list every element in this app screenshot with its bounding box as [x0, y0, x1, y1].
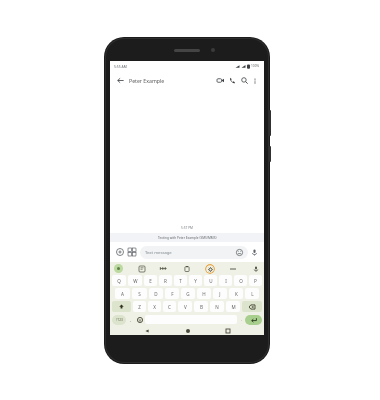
- button[interactable]: Stickers: [137, 264, 146, 273]
- button[interactable]: Attach: [114, 246, 126, 258]
- button[interactable]: E: [144, 275, 157, 286]
- staticText: Q: [117, 278, 121, 284]
- staticText: E: [149, 278, 152, 284]
- staticText: X: [153, 304, 156, 310]
- button[interactable]: G: [181, 288, 195, 299]
- staticText: R: [164, 278, 167, 284]
- button[interactable]: GIF: [159, 264, 168, 273]
- button[interactable]: C: [163, 301, 176, 312]
- button[interactable]: W: [128, 275, 142, 286]
- staticText: .: [241, 317, 243, 322]
- button[interactable]: K: [229, 288, 243, 299]
- button[interactable]: Google: [114, 264, 123, 273]
- button[interactable]: N: [210, 301, 224, 312]
- button[interactable]: A: [115, 288, 130, 299]
- button[interactable]: Voice typing: [251, 264, 260, 273]
- button[interactable]: T: [174, 275, 187, 286]
- staticText: H: [202, 291, 206, 297]
- button[interactable]: P: [249, 275, 262, 286]
- button[interactable]: Q: [112, 275, 126, 286]
- staticText: C: [168, 304, 171, 310]
- staticText: Text message: [145, 250, 172, 256]
- button[interactable]: Recents: [223, 326, 232, 335]
- staticText: W: [133, 278, 138, 284]
- staticText: 100%: [251, 64, 260, 68]
- staticText: P: [254, 278, 257, 284]
- button[interactable]: Video call: [214, 74, 226, 86]
- button[interactable]: F: [165, 288, 179, 299]
- staticText: 5:55 AM: [114, 64, 127, 69]
- staticText: 5:57 PM: [181, 226, 193, 230]
- button[interactable]: X: [148, 301, 161, 312]
- button[interactable]: H: [197, 288, 211, 299]
- button[interactable]: R: [159, 275, 172, 286]
- button[interactable]: More options: [250, 76, 259, 85]
- button[interactable]: Apps: [126, 246, 138, 258]
- button[interactable]: Backspace: [242, 301, 262, 312]
- staticText: V: [184, 304, 187, 310]
- button[interactable]: U: [204, 275, 217, 286]
- staticText: Z: [138, 304, 141, 310]
- button[interactable]: D: [149, 288, 163, 299]
- staticText: ,: [130, 317, 132, 322]
- button[interactable]: Search: [238, 74, 250, 86]
- staticText: F: [171, 291, 174, 297]
- button[interactable]: Emoji: [135, 314, 144, 325]
- staticText: L: [251, 291, 254, 297]
- staticText: A: [121, 291, 124, 297]
- button[interactable]: Shift: [112, 301, 131, 312]
- button[interactable]: ?123: [112, 315, 126, 325]
- staticText: U: [209, 278, 213, 284]
- button[interactable]: Z: [133, 301, 146, 312]
- button[interactable]: Collapse: [228, 264, 237, 273]
- button[interactable]: Settings: [205, 264, 215, 274]
- button[interactable]: Call: [226, 74, 238, 86]
- staticText: D: [154, 291, 158, 297]
- button[interactable]: Y: [189, 275, 202, 286]
- staticText: Peter Example: [129, 77, 165, 84]
- staticText: N: [215, 304, 219, 310]
- button[interactable]: Enter: [245, 315, 262, 325]
- button[interactable]: Back: [115, 75, 126, 86]
- staticText: T: [179, 278, 182, 284]
- button[interactable]: J: [213, 288, 227, 299]
- button[interactable]: Voice input: [248, 246, 260, 258]
- staticText: K: [235, 291, 238, 297]
- button[interactable]: Clipboard: [182, 264, 191, 273]
- staticText: M: [231, 304, 236, 310]
- button[interactable]: Comma: [126, 314, 135, 325]
- button[interactable]: V: [178, 301, 192, 312]
- staticText: B: [200, 304, 203, 310]
- button[interactable]: B: [194, 301, 208, 312]
- staticText: G: [186, 291, 190, 297]
- staticText: J: [219, 291, 221, 297]
- button[interactable]: S: [132, 288, 147, 299]
- staticText: S: [138, 291, 141, 297]
- button[interactable]: O: [234, 275, 247, 286]
- staticText: I: [225, 278, 227, 284]
- button[interactable]: M: [226, 301, 240, 312]
- button[interactable]: Back: [142, 326, 151, 335]
- staticText: Y: [194, 278, 197, 284]
- button[interactable]: Text message: [140, 246, 248, 259]
- staticText: O: [239, 278, 243, 284]
- button[interactable]: I: [219, 275, 232, 286]
- button[interactable]: Home: [183, 326, 192, 335]
- button[interactable]: L: [245, 288, 259, 299]
- button[interactable]: Peter Example: [129, 77, 214, 84]
- staticText: Texting with Peter Example (SMS/MMS): [158, 236, 217, 240]
- staticText: ?123: [116, 318, 123, 322]
